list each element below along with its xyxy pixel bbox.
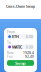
- button[interactable]: MATIC: [7, 44, 34, 49]
- staticText: Rate: [7, 50, 14, 55]
- staticText: ETH: [12, 34, 19, 39]
- button[interactable]: ETH: [7, 34, 34, 39]
- staticText: Fee: [7, 54, 13, 59]
- staticText: To: [7, 40, 11, 45]
- staticText: 1928.4: [23, 50, 34, 55]
- staticText: Cross-Chain Swap: [6, 4, 35, 9]
- staticText: MATIC: [12, 44, 22, 49]
- button[interactable]: Swap: [7, 60, 34, 66]
- staticText: 0.00: [26, 44, 33, 49]
- staticText: 0.00: [26, 34, 33, 39]
- staticText: Swap: [15, 60, 26, 66]
- staticText: $2.40: [25, 54, 34, 59]
- staticText: From: [7, 30, 15, 34]
